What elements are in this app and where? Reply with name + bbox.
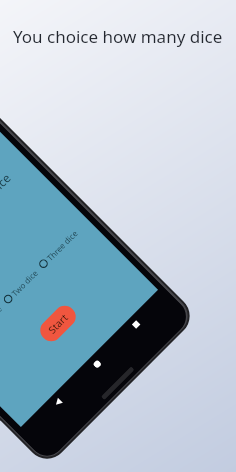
button[interactable]: Recent apps xyxy=(132,320,140,329)
staticText: Three dice xyxy=(44,228,80,263)
button[interactable]: Start xyxy=(36,301,80,346)
staticText: One dice xyxy=(0,303,5,334)
button[interactable]: Home xyxy=(92,359,102,369)
button[interactable]: Three dice xyxy=(36,229,78,271)
staticText: You choice how many dice xyxy=(0,170,14,286)
button[interactable]: One dice xyxy=(0,304,3,342)
button[interactable]: Two dice xyxy=(1,269,39,306)
staticText: You choice how many dice xyxy=(13,25,223,48)
button[interactable]: Back xyxy=(53,397,64,408)
staticText: Two dice xyxy=(9,267,40,298)
staticText: Start xyxy=(45,310,71,337)
